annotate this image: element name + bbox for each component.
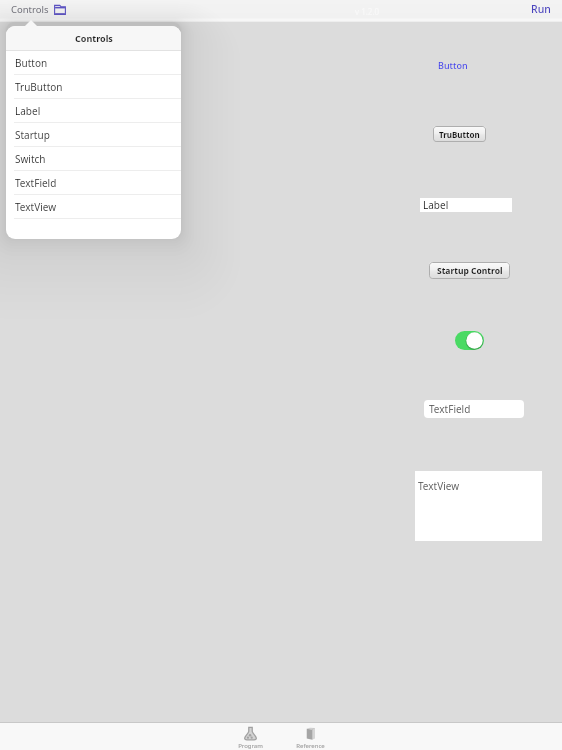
button[interactable]: TextField xyxy=(6,171,181,195)
staticText: Controls xyxy=(11,3,49,16)
button[interactable] xyxy=(455,331,484,350)
staticText: Startup Control xyxy=(437,265,503,277)
button[interactable]: Button xyxy=(438,59,468,71)
staticText: TextField xyxy=(429,402,471,416)
staticText: Controls xyxy=(75,32,113,44)
button[interactable]: TruButton xyxy=(433,126,486,142)
button[interactable]: TextView xyxy=(415,471,542,541)
button[interactable]: Run xyxy=(531,2,551,16)
button[interactable]: Switch xyxy=(6,147,181,171)
button[interactable]: Label xyxy=(6,99,181,123)
staticText: Startup xyxy=(15,128,50,142)
button[interactable]: TextField xyxy=(424,400,524,418)
staticText: TextView xyxy=(418,479,460,493)
button[interactable]: Startup Control xyxy=(429,262,510,279)
staticText: Button xyxy=(15,56,48,70)
staticText: TruButton xyxy=(439,129,480,140)
staticText: TextView xyxy=(15,200,57,214)
staticText: TextField xyxy=(15,176,57,190)
staticText: Switch xyxy=(15,152,46,166)
button[interactable]: Reference xyxy=(282,722,338,750)
staticText: Program xyxy=(238,742,263,750)
button[interactable]: TruButton xyxy=(6,75,181,99)
button[interactable]: Button xyxy=(6,51,181,75)
staticText: Button xyxy=(438,59,468,71)
staticText: TruButton xyxy=(15,80,63,94)
button[interactable]: TextView xyxy=(6,195,181,219)
button[interactable]: Controls xyxy=(11,3,49,16)
staticText: Reference xyxy=(296,742,325,750)
staticText: Run xyxy=(531,2,551,16)
button[interactable]: Program xyxy=(222,722,278,750)
button[interactable]: Open controls folder xyxy=(54,4,66,15)
button[interactable]: Startup xyxy=(6,123,181,147)
staticText: Label xyxy=(15,104,41,118)
staticText: Label xyxy=(423,198,449,212)
